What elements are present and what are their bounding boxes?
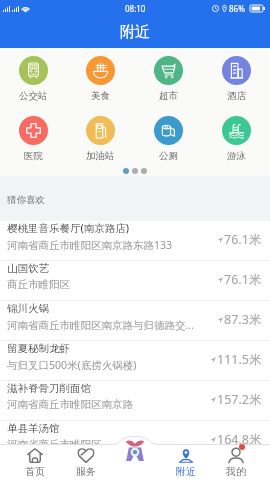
button[interactable]: 公交站	[0, 56, 67, 102]
staticText: 公厕	[159, 150, 178, 162]
staticText: 附近	[176, 465, 196, 478]
button[interactable]: 留夏秘制龙虾	[0, 341, 270, 381]
staticText: 商丘市睢阳区	[7, 278, 70, 291]
button[interactable]: 单县羊汤馆	[0, 421, 270, 461]
staticText: 首页	[25, 465, 45, 478]
staticText: 08:10	[125, 3, 146, 14]
staticText: 76.1米	[224, 271, 262, 288]
button[interactable]: 公厕	[134, 116, 202, 162]
staticText: 河南省商丘市睢阳区	[7, 438, 102, 451]
staticText: 医院	[24, 150, 43, 162]
staticText: 山国饮艺	[7, 262, 49, 275]
button[interactable]: 扫一扫	[124, 436, 146, 462]
staticText: 76.1米	[224, 231, 262, 248]
button[interactable]: 锦川火锅	[0, 301, 270, 341]
staticText: 单县羊汤馆	[7, 422, 60, 435]
staticText: 留夏秘制龙虾	[7, 342, 70, 355]
button[interactable]: 酒店	[202, 56, 270, 102]
staticText: 酒店	[227, 90, 246, 102]
button[interactable]: 滋补脊骨刀削面馆	[0, 381, 270, 421]
button[interactable]: 加油站	[67, 116, 134, 162]
staticText: 附近	[120, 23, 150, 42]
staticText: 服务	[76, 465, 96, 478]
button[interactable]: 美食	[67, 56, 134, 102]
staticText: 樱桃里音乐餐厅(南京路店)	[7, 221, 130, 235]
staticText: 我的	[226, 465, 246, 478]
staticText: 滋补脊骨刀削面馆	[7, 382, 91, 395]
staticText: 与归叉口500米(底捞火锅楼)	[7, 358, 137, 372]
staticText: 游泳	[227, 150, 246, 162]
staticText: 87.3米	[224, 311, 262, 328]
staticText: 加油站	[86, 150, 115, 162]
staticText: 河南省商丘市睢阳区南京路东路133	[7, 238, 173, 252]
staticText: 111.5米	[217, 351, 262, 368]
button[interactable]: 附近	[161, 444, 211, 480]
button[interactable]: 樱桃里音乐餐厅(南京路店)	[0, 221, 270, 261]
button[interactable]: 服务	[60, 444, 111, 480]
button[interactable]: 游泳	[202, 116, 270, 162]
staticText: 河南省商丘市睢阳区南京路	[7, 398, 133, 411]
staticText: 公交站	[19, 90, 48, 102]
staticText: 超市	[159, 90, 178, 102]
button[interactable]: 超市	[134, 56, 202, 102]
staticText: 猜你喜欢	[7, 194, 45, 206]
staticText: 164.8米	[217, 431, 262, 448]
staticText: 86%	[229, 3, 245, 14]
staticText: 美食	[91, 90, 110, 102]
staticText: 157.2米	[217, 391, 262, 408]
button[interactable]: 医院	[0, 116, 67, 162]
staticText: 河南省商丘市睢阳区南京路与归德路交...	[7, 318, 194, 332]
button[interactable]: 山国饮艺	[0, 261, 270, 301]
button[interactable]: 我的	[211, 444, 261, 480]
button[interactable]: 首页	[9, 444, 60, 480]
staticText: 锦川火锅	[7, 302, 49, 315]
